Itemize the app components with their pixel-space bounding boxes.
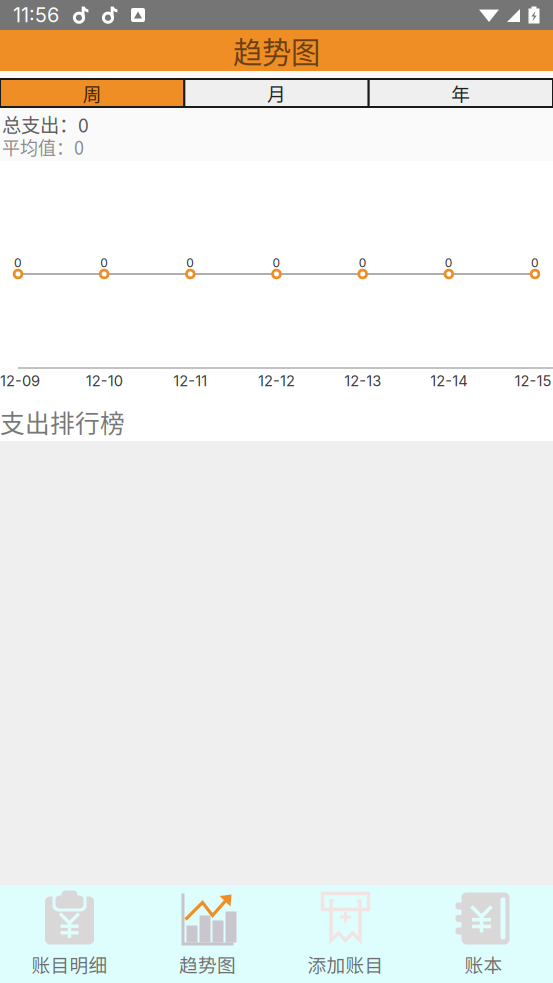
button[interactable]: 周 [0,79,184,107]
staticText: 12-14 [430,372,467,390]
staticText: 12-12 [258,372,295,390]
staticText: 0 [272,256,280,270]
staticText: 趋势图 [179,950,236,977]
button[interactable]: 月 [184,79,369,107]
staticText: 0 [100,256,108,270]
staticText: 12-13 [344,372,381,390]
staticText: 总支出：0 [2,110,89,138]
staticText: 周 [83,79,102,106]
staticText: 12-09 [0,372,40,390]
staticText: 0 [531,256,539,270]
staticText: 0 [14,256,22,270]
staticText: 支出排行榜 [0,404,125,440]
staticText: 年 [451,79,470,106]
staticText: 账目明细 [31,950,107,977]
staticText: 账本 [464,950,502,977]
button[interactable]: 趋势图 [138,885,276,983]
staticText: 12-11 [173,372,207,390]
staticText: 11:56 [13,3,59,27]
button[interactable]: 添加账目 [276,885,414,983]
button[interactable]: 账本 [414,885,552,983]
button[interactable]: 年 [369,79,553,107]
staticText: 0 [186,256,194,270]
staticText: 添加账目 [307,950,383,977]
button[interactable]: 账目明细 [0,885,138,983]
staticText: 0 [445,256,453,270]
staticText: 月 [267,79,286,106]
staticText: 12-10 [86,372,123,390]
staticText: 趋势图 [233,29,320,72]
staticText: 12-15 [514,372,551,390]
staticText: 0 [359,256,367,270]
staticText: 平均值：0 [2,134,84,160]
